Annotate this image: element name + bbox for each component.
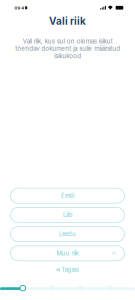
staticText: 09:41 bbox=[14, 6, 26, 10]
staticText: Eesti bbox=[61, 192, 74, 199]
staticText: Leedu bbox=[59, 231, 76, 237]
button[interactable]: Muu riik bbox=[10, 246, 124, 261]
button[interactable]: Läti bbox=[10, 207, 124, 222]
button[interactable]: Eesti bbox=[10, 188, 124, 203]
staticText: Muu riik bbox=[56, 250, 78, 256]
staticText: Tagasi bbox=[61, 266, 78, 273]
staticText: Vali riik, kus sul on olemas isikut tõen… bbox=[15, 38, 120, 60]
button[interactable]: Leedu bbox=[10, 227, 124, 242]
staticText: Vali riik bbox=[49, 16, 86, 26]
staticText: Läti bbox=[63, 212, 72, 218]
button[interactable]: Tagasi bbox=[52, 263, 82, 276]
